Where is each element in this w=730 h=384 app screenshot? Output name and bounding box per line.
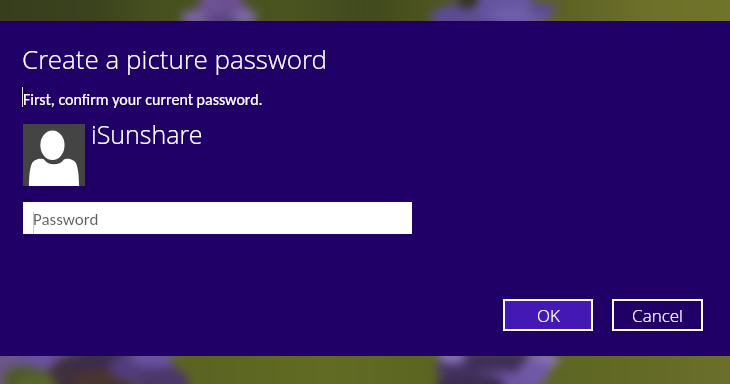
staticText: Password	[33, 209, 99, 230]
staticText: First, confirm your current password.	[23, 90, 263, 110]
button[interactable]: OK	[503, 299, 593, 331]
staticText: Create a picture password	[22, 41, 328, 76]
button[interactable]: Password	[23, 202, 412, 234]
button[interactable]: Cancel	[612, 299, 703, 331]
staticText: iSunshare	[91, 117, 203, 151]
staticText: Cancel	[632, 304, 683, 327]
staticText: OK	[537, 304, 560, 327]
